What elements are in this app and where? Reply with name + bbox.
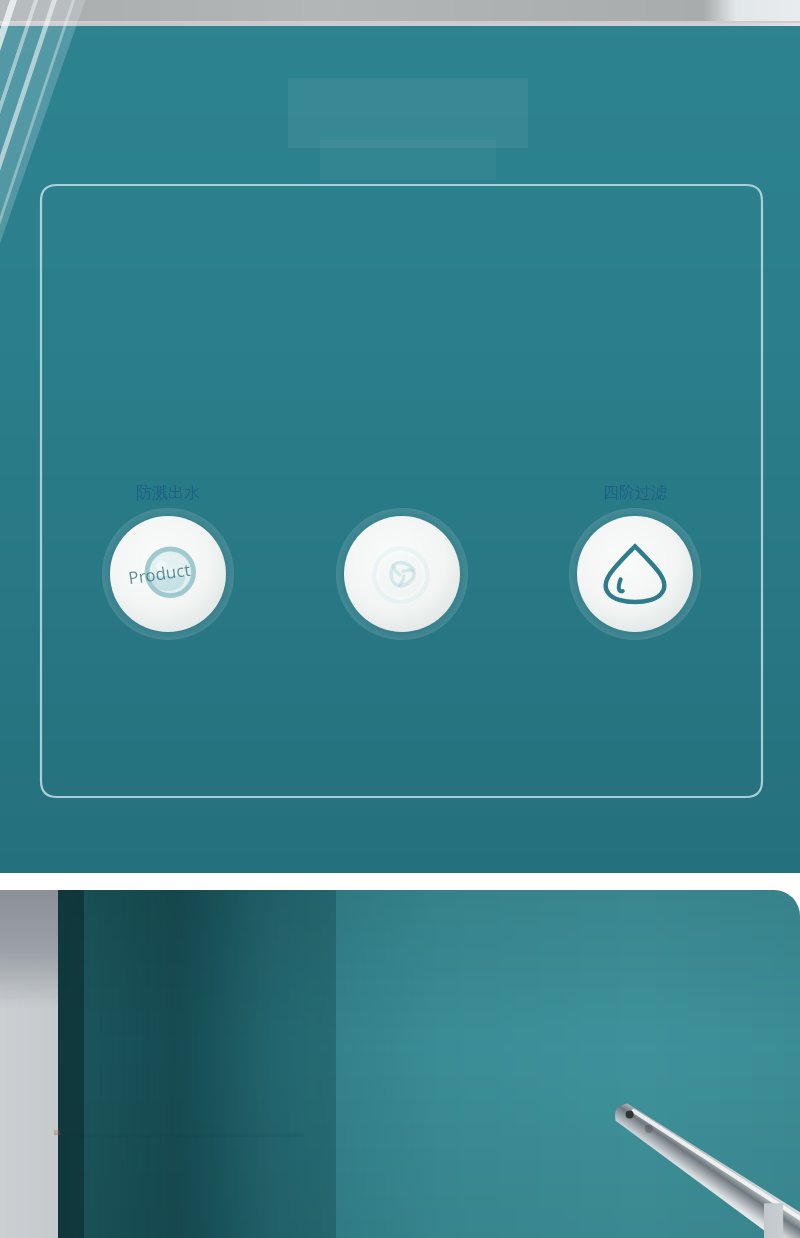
- button[interactable]: 防溅出水: [104, 483, 232, 640]
- staticText: 四阶过滤: [571, 483, 699, 503]
- button[interactable]: 四阶过滤: [571, 483, 699, 640]
- button[interactable]: 出水模式: [338, 483, 466, 640]
- staticText: Product: [127, 558, 192, 589]
- staticText: 防溅出水: [104, 483, 232, 503]
